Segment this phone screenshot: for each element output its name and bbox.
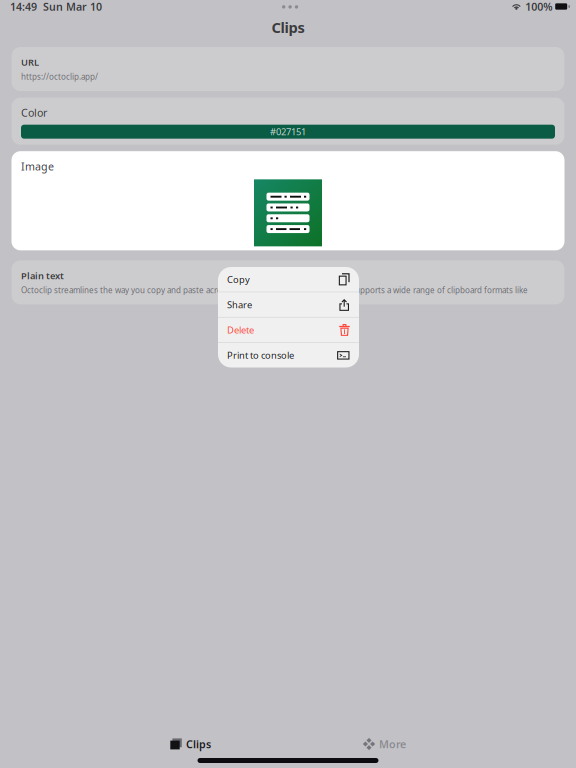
staticText: Octoclip streamlines the way you copy an… <box>21 285 528 295</box>
button[interactable]: Plain text <box>11 260 564 304</box>
staticText: https://octoclip.app/ <box>21 71 98 82</box>
staticText: URL <box>21 56 39 68</box>
button[interactable]: Share <box>218 292 359 317</box>
staticText: Print to console <box>227 349 294 361</box>
staticText: Share <box>227 298 252 311</box>
staticText: Copy <box>227 273 250 285</box>
staticText: Image <box>21 159 54 173</box>
button[interactable]: Delete <box>218 318 359 342</box>
staticText: More <box>379 737 406 751</box>
staticText: Plain text <box>21 269 64 282</box>
staticText: Clips <box>271 17 304 37</box>
staticText: Color <box>21 105 47 120</box>
button[interactable]: URL <box>11 47 564 91</box>
button[interactable]: Print to console <box>218 343 359 367</box>
staticText: #027151 <box>270 125 306 138</box>
staticText: Delete <box>227 324 254 336</box>
button[interactable]: More <box>359 734 410 754</box>
staticText: 14:49 <box>10 0 37 14</box>
staticText: Clips <box>186 737 211 751</box>
button[interactable]: Image <box>11 151 564 250</box>
button[interactable]: Copy <box>218 267 359 292</box>
button[interactable]: Clips <box>166 734 215 754</box>
button[interactable]: Color <box>11 97 564 145</box>
staticText: 100% <box>525 0 552 14</box>
staticText: Sun Mar 10 <box>43 0 102 14</box>
